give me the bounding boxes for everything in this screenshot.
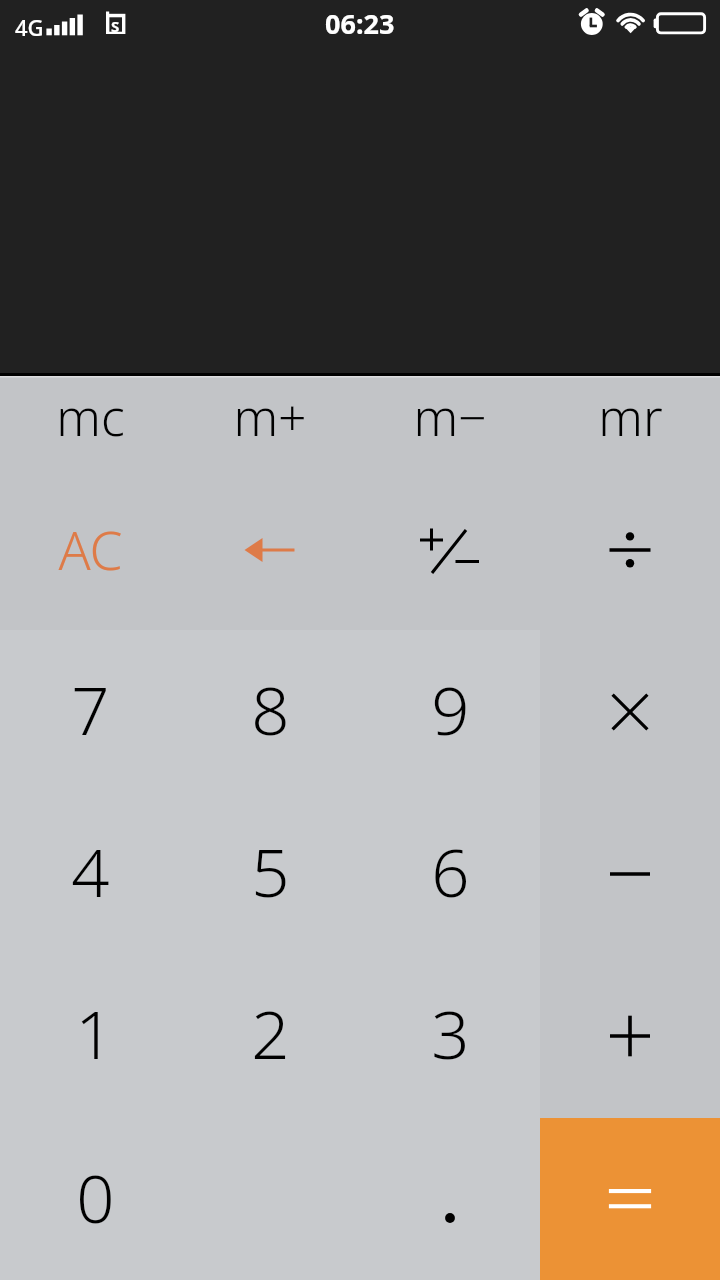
button[interactable]: 6	[360, 794, 540, 956]
staticText: mc	[56, 383, 125, 451]
button[interactable]: 1	[0, 956, 180, 1118]
staticText: 2	[251, 987, 290, 1078]
staticText: 6	[431, 825, 470, 916]
button[interactable]: Backspace	[180, 504, 360, 631]
button[interactable]: Add	[540, 956, 720, 1118]
button[interactable]: 3	[360, 956, 540, 1118]
button[interactable]: 5	[180, 794, 360, 956]
button[interactable]: mr	[540, 378, 720, 505]
button[interactable]: 7	[0, 632, 180, 794]
staticText: 3	[431, 987, 470, 1078]
staticText: 1	[75, 987, 114, 1078]
staticText: S	[111, 16, 120, 36]
button[interactable]: m−	[360, 378, 540, 505]
staticText: mr	[598, 383, 663, 451]
staticText: 06:23	[325, 5, 395, 42]
button[interactable]: Equals	[540, 1118, 720, 1280]
button[interactable]: 8	[180, 632, 360, 794]
staticText: 7	[71, 663, 110, 754]
staticText: 0	[76, 1151, 115, 1242]
staticText: 4G	[15, 12, 44, 42]
button[interactable]: Divide	[540, 504, 720, 631]
button[interactable]: Decimal point	[360, 1118, 540, 1280]
button[interactable]: 9	[360, 632, 540, 794]
staticText: 9	[431, 663, 470, 754]
button[interactable]: 2	[180, 956, 360, 1118]
staticText: 8	[251, 663, 290, 754]
staticText: m+	[233, 383, 307, 451]
button[interactable]: Subtract	[540, 794, 720, 956]
staticText: AC	[58, 513, 123, 585]
staticText: 4	[71, 825, 110, 916]
button[interactable]: 4	[0, 794, 180, 956]
staticText: m−	[413, 383, 487, 451]
button[interactable]: 0	[0, 1118, 180, 1280]
button[interactable]: mc	[0, 378, 180, 505]
button[interactable]: Plus minus	[360, 504, 540, 631]
staticText: 5	[251, 825, 290, 916]
button[interactable]: Multiply	[540, 632, 720, 794]
button[interactable]: AC	[0, 504, 180, 631]
button[interactable]: m+	[180, 378, 360, 505]
